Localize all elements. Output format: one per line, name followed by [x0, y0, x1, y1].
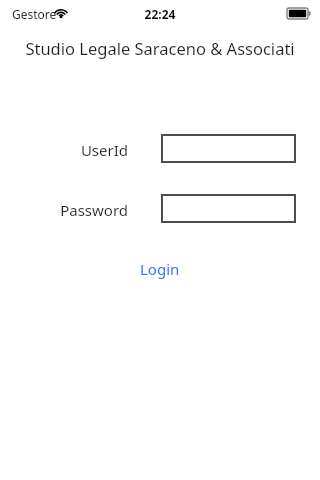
button[interactable]: Login [130, 256, 190, 282]
staticText: 22:24 [0, 6, 320, 22]
button[interactable]: UserId [161, 134, 296, 163]
staticText: Gestore [12, 6, 57, 22]
staticText: UserId [28, 140, 128, 160]
staticText: Password [28, 200, 128, 220]
staticText: Login [140, 259, 180, 279]
button[interactable]: Password [161, 194, 296, 223]
staticText: Studio Legale Saraceno & Associati [0, 37, 320, 59]
